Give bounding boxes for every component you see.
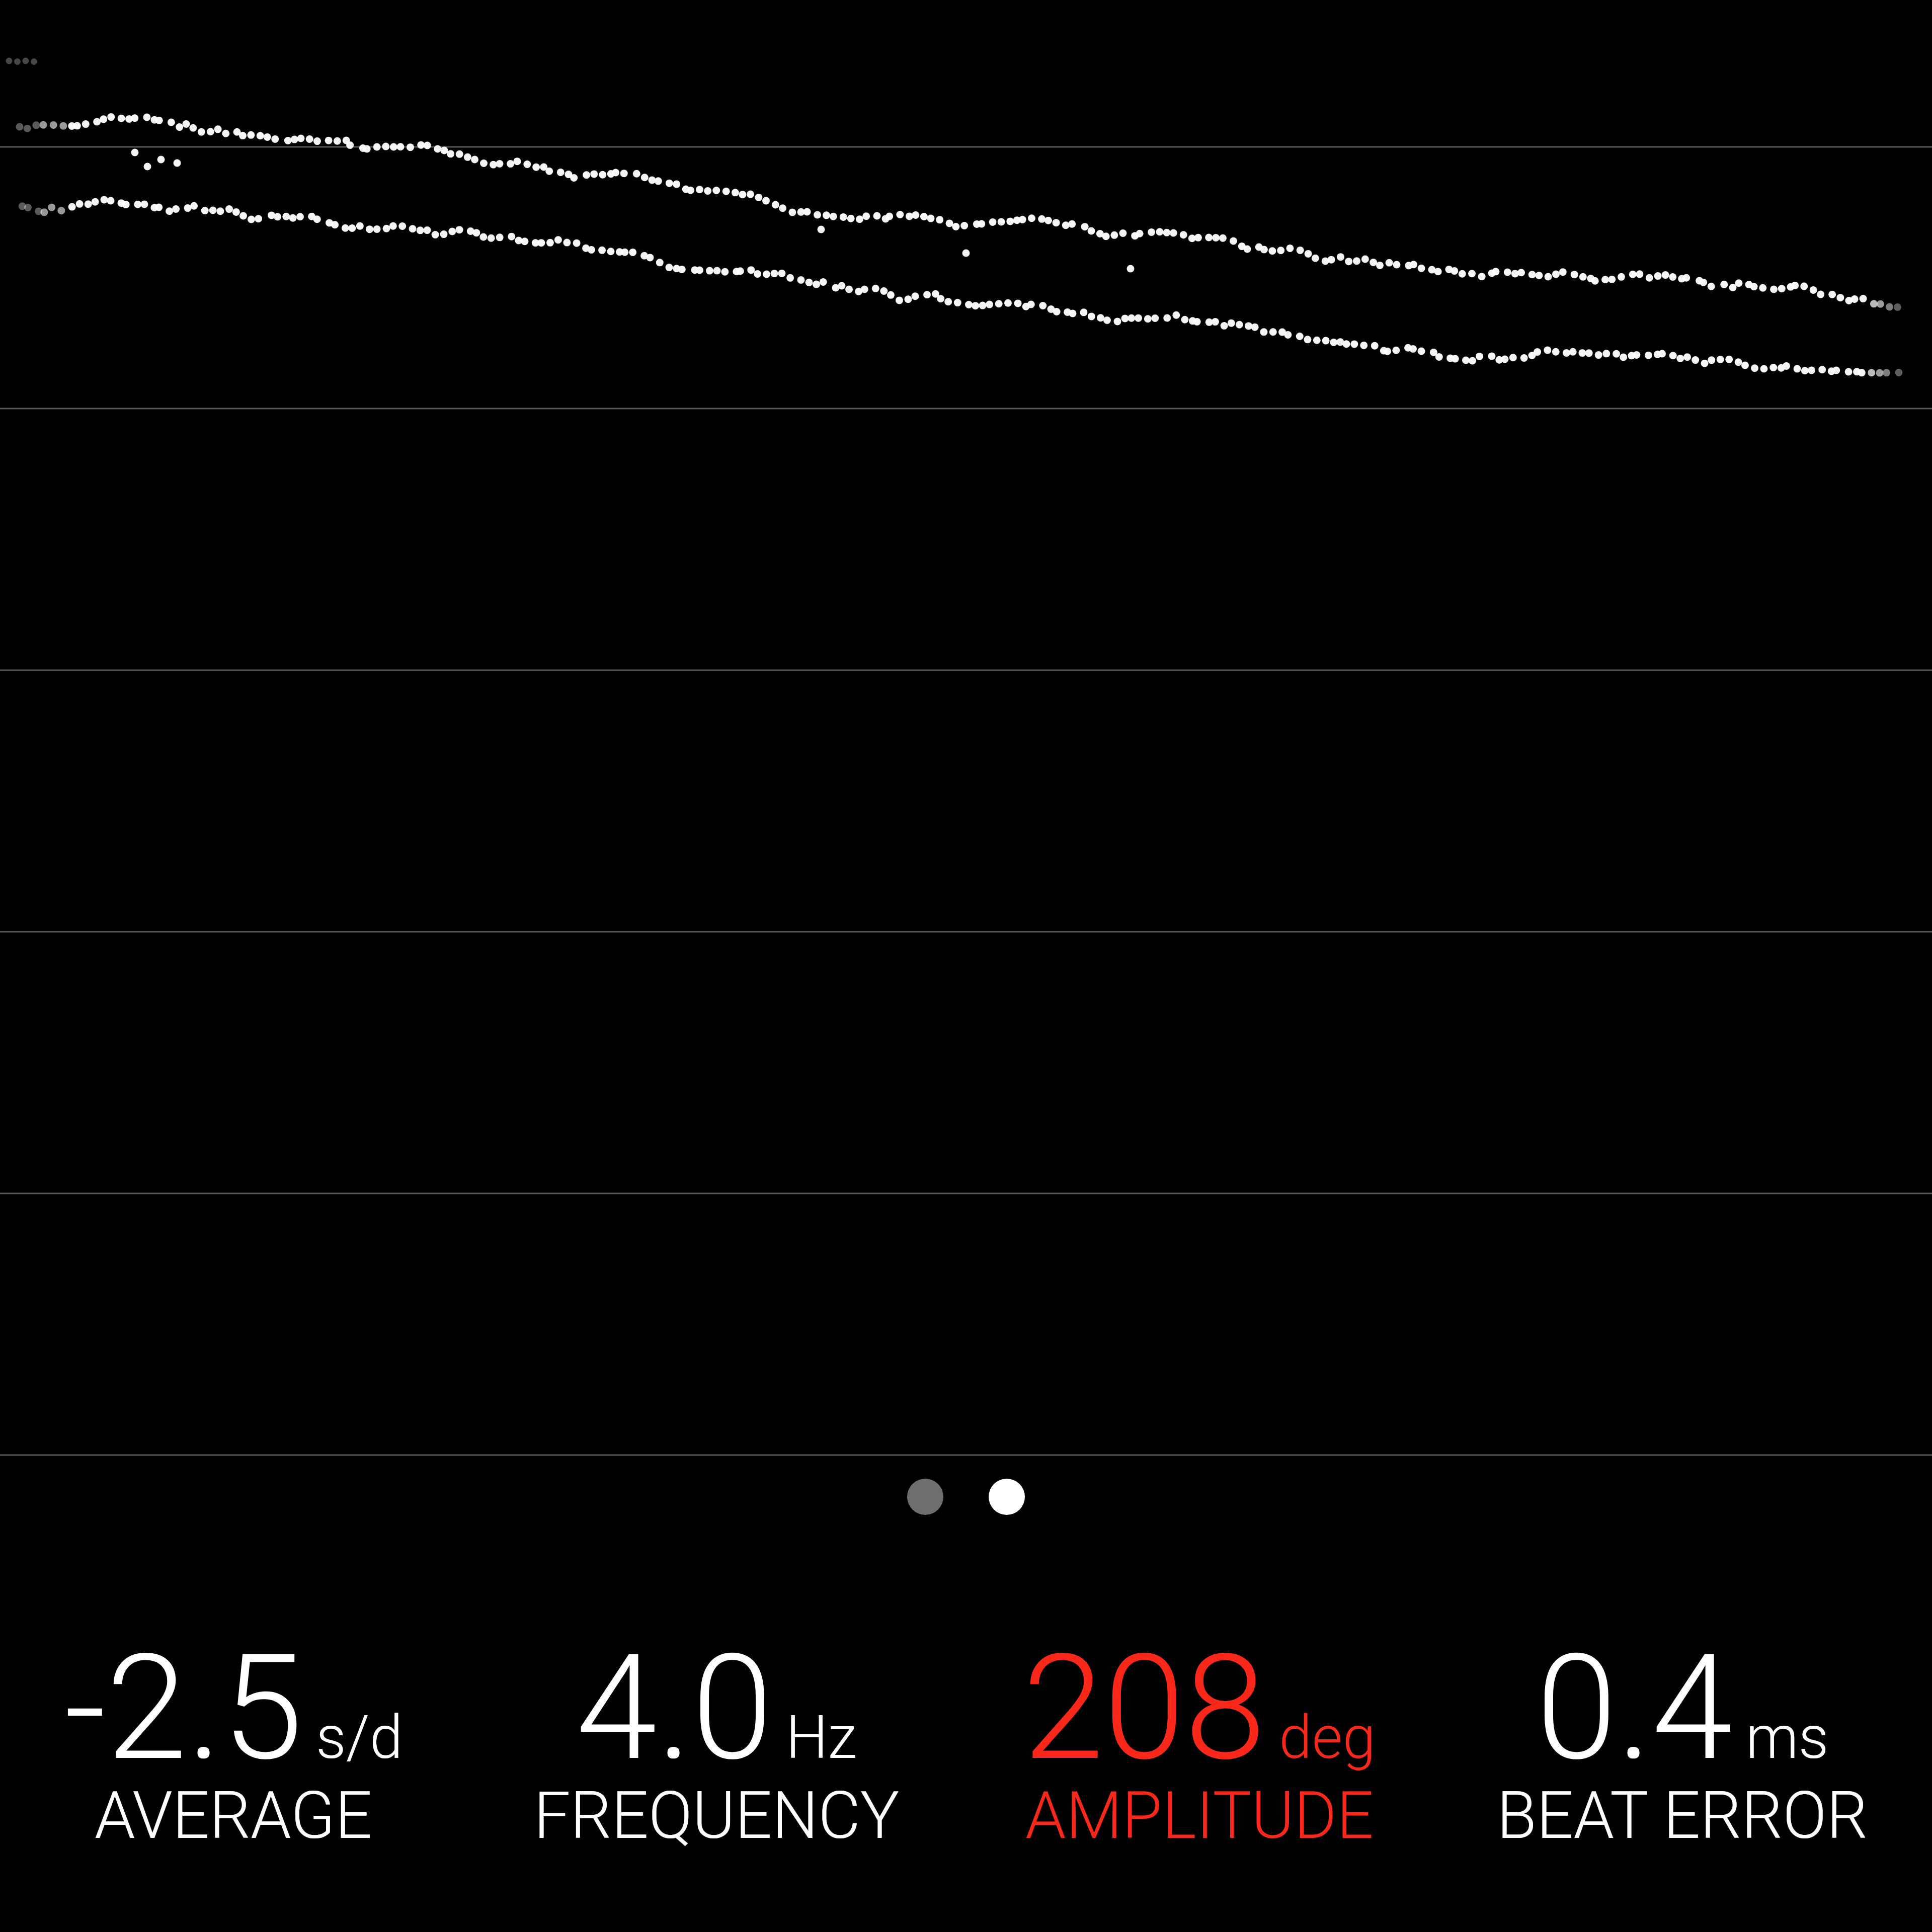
button[interactable]: 0.4 bbox=[1441, 1623, 1924, 1794]
staticText: s/d bbox=[316, 1703, 403, 1773]
staticText: deg bbox=[1279, 1703, 1376, 1773]
staticText: 208 bbox=[1023, 1623, 1266, 1794]
staticText: Hz bbox=[786, 1703, 857, 1773]
staticText: AMPLITUDE bbox=[1025, 1778, 1374, 1854]
button[interactable]: -2.5 bbox=[0, 1623, 475, 1794]
button[interactable] bbox=[891, 1462, 1041, 1532]
staticText: ms bbox=[1746, 1703, 1829, 1773]
button[interactable]: 4.0 bbox=[475, 1623, 958, 1794]
staticText: FREQUENCY bbox=[534, 1778, 900, 1854]
staticText: BEAT ERROR bbox=[1497, 1778, 1868, 1854]
button[interactable]: 208 bbox=[958, 1623, 1441, 1794]
staticText: -2.5 bbox=[64, 1623, 303, 1794]
staticText: 4.0 bbox=[576, 1623, 773, 1794]
staticText: 0.4 bbox=[1536, 1623, 1733, 1794]
staticText: AVERAGE bbox=[95, 1778, 372, 1854]
